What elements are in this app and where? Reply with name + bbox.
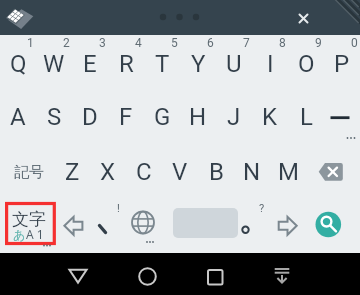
staticText: D xyxy=(82,103,98,131)
button[interactable] xyxy=(144,35,180,89)
staticText: S xyxy=(47,103,62,131)
button[interactable] xyxy=(36,89,72,144)
button[interactable] xyxy=(216,35,252,89)
button[interactable] xyxy=(130,259,164,293)
button[interactable] xyxy=(0,35,36,89)
button[interactable] xyxy=(180,35,216,89)
staticText: 5 xyxy=(171,36,178,50)
staticText: W xyxy=(43,50,65,78)
staticText: 文字 xyxy=(12,209,46,229)
button[interactable] xyxy=(36,35,72,89)
staticText: 9 xyxy=(315,36,322,50)
staticText: Y xyxy=(191,50,206,78)
staticText: 3 xyxy=(99,36,106,50)
staticText: あ xyxy=(13,227,26,242)
staticText: C xyxy=(136,158,152,186)
button[interactable] xyxy=(234,144,270,198)
button[interactable] xyxy=(306,198,360,253)
button[interactable] xyxy=(265,259,299,293)
staticText: F xyxy=(119,103,133,131)
staticText: R xyxy=(119,50,134,78)
button[interactable] xyxy=(252,89,288,144)
staticText: 7 xyxy=(243,36,250,50)
staticText: Q xyxy=(10,50,27,78)
button[interactable] xyxy=(144,89,180,144)
button[interactable] xyxy=(108,89,144,144)
button[interactable] xyxy=(72,35,108,89)
button[interactable] xyxy=(216,89,252,144)
button[interactable] xyxy=(170,198,240,253)
staticText: ? xyxy=(259,202,265,215)
button[interactable] xyxy=(108,35,144,89)
button[interactable] xyxy=(270,144,306,198)
staticText: 6 xyxy=(207,36,214,50)
button[interactable] xyxy=(306,144,360,198)
staticText: V xyxy=(172,158,188,186)
button[interactable] xyxy=(240,198,262,253)
staticText: L xyxy=(300,103,313,131)
button[interactable] xyxy=(288,35,324,89)
staticText: K xyxy=(262,103,278,131)
button[interactable] xyxy=(290,5,316,31)
staticText: E xyxy=(83,50,97,78)
button[interactable] xyxy=(252,35,288,89)
button[interactable] xyxy=(0,198,57,253)
staticText: I xyxy=(267,50,274,78)
button[interactable] xyxy=(198,260,232,294)
staticText: B xyxy=(209,158,224,186)
button[interactable] xyxy=(54,144,90,198)
button[interactable] xyxy=(0,144,54,198)
button[interactable] xyxy=(324,35,360,89)
button[interactable] xyxy=(72,89,108,144)
staticText: T xyxy=(155,50,170,78)
button[interactable] xyxy=(61,259,95,293)
staticText: G xyxy=(154,103,171,131)
staticText: Z xyxy=(65,158,80,186)
staticText: N xyxy=(243,158,261,186)
button[interactable] xyxy=(324,89,360,144)
staticText: 8 xyxy=(279,36,286,50)
staticText: M xyxy=(278,158,299,186)
staticText: 1 xyxy=(27,36,34,50)
staticText: H xyxy=(189,103,207,131)
button[interactable] xyxy=(180,89,216,144)
staticText: X xyxy=(100,158,116,186)
button[interactable] xyxy=(90,144,126,198)
staticText: 2 xyxy=(63,36,70,50)
staticText: P xyxy=(334,50,350,78)
staticText: 記号 xyxy=(14,163,44,182)
staticText: O xyxy=(298,50,315,78)
staticText: 4 xyxy=(135,36,142,50)
staticText: A 1 xyxy=(26,226,44,242)
button[interactable] xyxy=(0,89,36,144)
button[interactable] xyxy=(126,144,162,198)
button[interactable] xyxy=(118,198,170,253)
button[interactable] xyxy=(162,144,198,198)
button[interactable] xyxy=(288,89,324,144)
staticText: ! xyxy=(117,202,120,215)
staticText: A xyxy=(10,103,26,131)
staticText: U xyxy=(226,50,242,78)
button[interactable] xyxy=(198,144,234,198)
button[interactable] xyxy=(57,198,88,253)
staticText: 0 xyxy=(351,36,358,50)
button[interactable] xyxy=(88,198,118,253)
button[interactable] xyxy=(262,198,306,253)
staticText: J xyxy=(227,103,241,131)
